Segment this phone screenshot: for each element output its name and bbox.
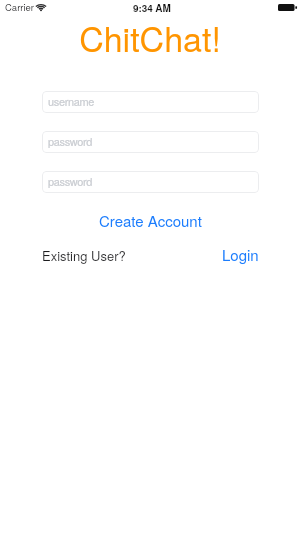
staticText: 9:34 AM (133, 1, 171, 15)
staticText: Existing User? (42, 246, 126, 265)
staticText: Carrier (5, 0, 35, 14)
button[interactable]: password (42, 131, 259, 153)
button[interactable]: Login (222, 244, 259, 265)
staticText: username (48, 93, 95, 109)
other: Wi-Fi signal (36, 4, 46, 11)
other: Battery full (278, 3, 297, 12)
button[interactable]: username (42, 91, 259, 113)
staticText: ChitChat! (0, 13, 300, 62)
button[interactable]: Create Account (0, 208, 300, 232)
staticText: password (48, 133, 93, 149)
staticText: Login (222, 244, 259, 265)
button[interactable]: Existing User? (42, 246, 126, 265)
staticText: password (48, 173, 93, 189)
button[interactable]: password (42, 171, 259, 193)
staticText: Create Account (99, 210, 202, 231)
